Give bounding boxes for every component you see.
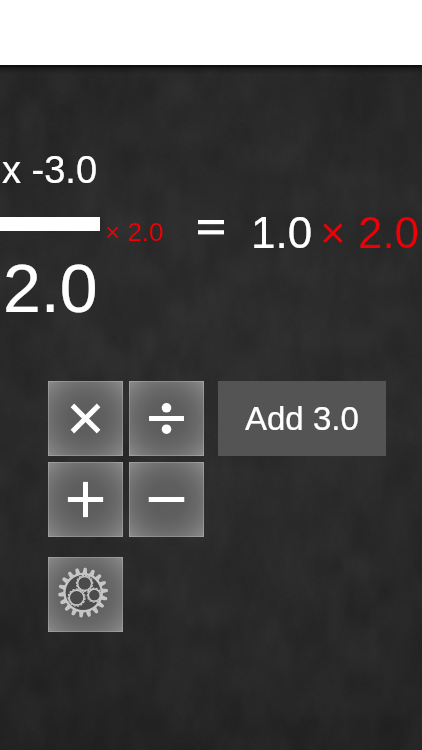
staticText: x -3.0 <box>2 149 98 191</box>
staticText: 2.0 <box>3 250 98 326</box>
button[interactable]: Subtract <box>129 462 204 537</box>
button[interactable]: Add <box>48 462 123 537</box>
staticText: 1.0 <box>251 208 313 257</box>
staticText: Add 3.0 <box>245 400 359 437</box>
staticText: × 2.0 <box>320 208 420 257</box>
button[interactable]: Settings <box>48 557 123 632</box>
staticText: × 2.0 <box>105 217 164 246</box>
button[interactable]: Add 3.0 <box>218 381 386 456</box>
button[interactable]: Multiply <box>48 381 123 456</box>
button[interactable]: Divide <box>129 381 204 456</box>
